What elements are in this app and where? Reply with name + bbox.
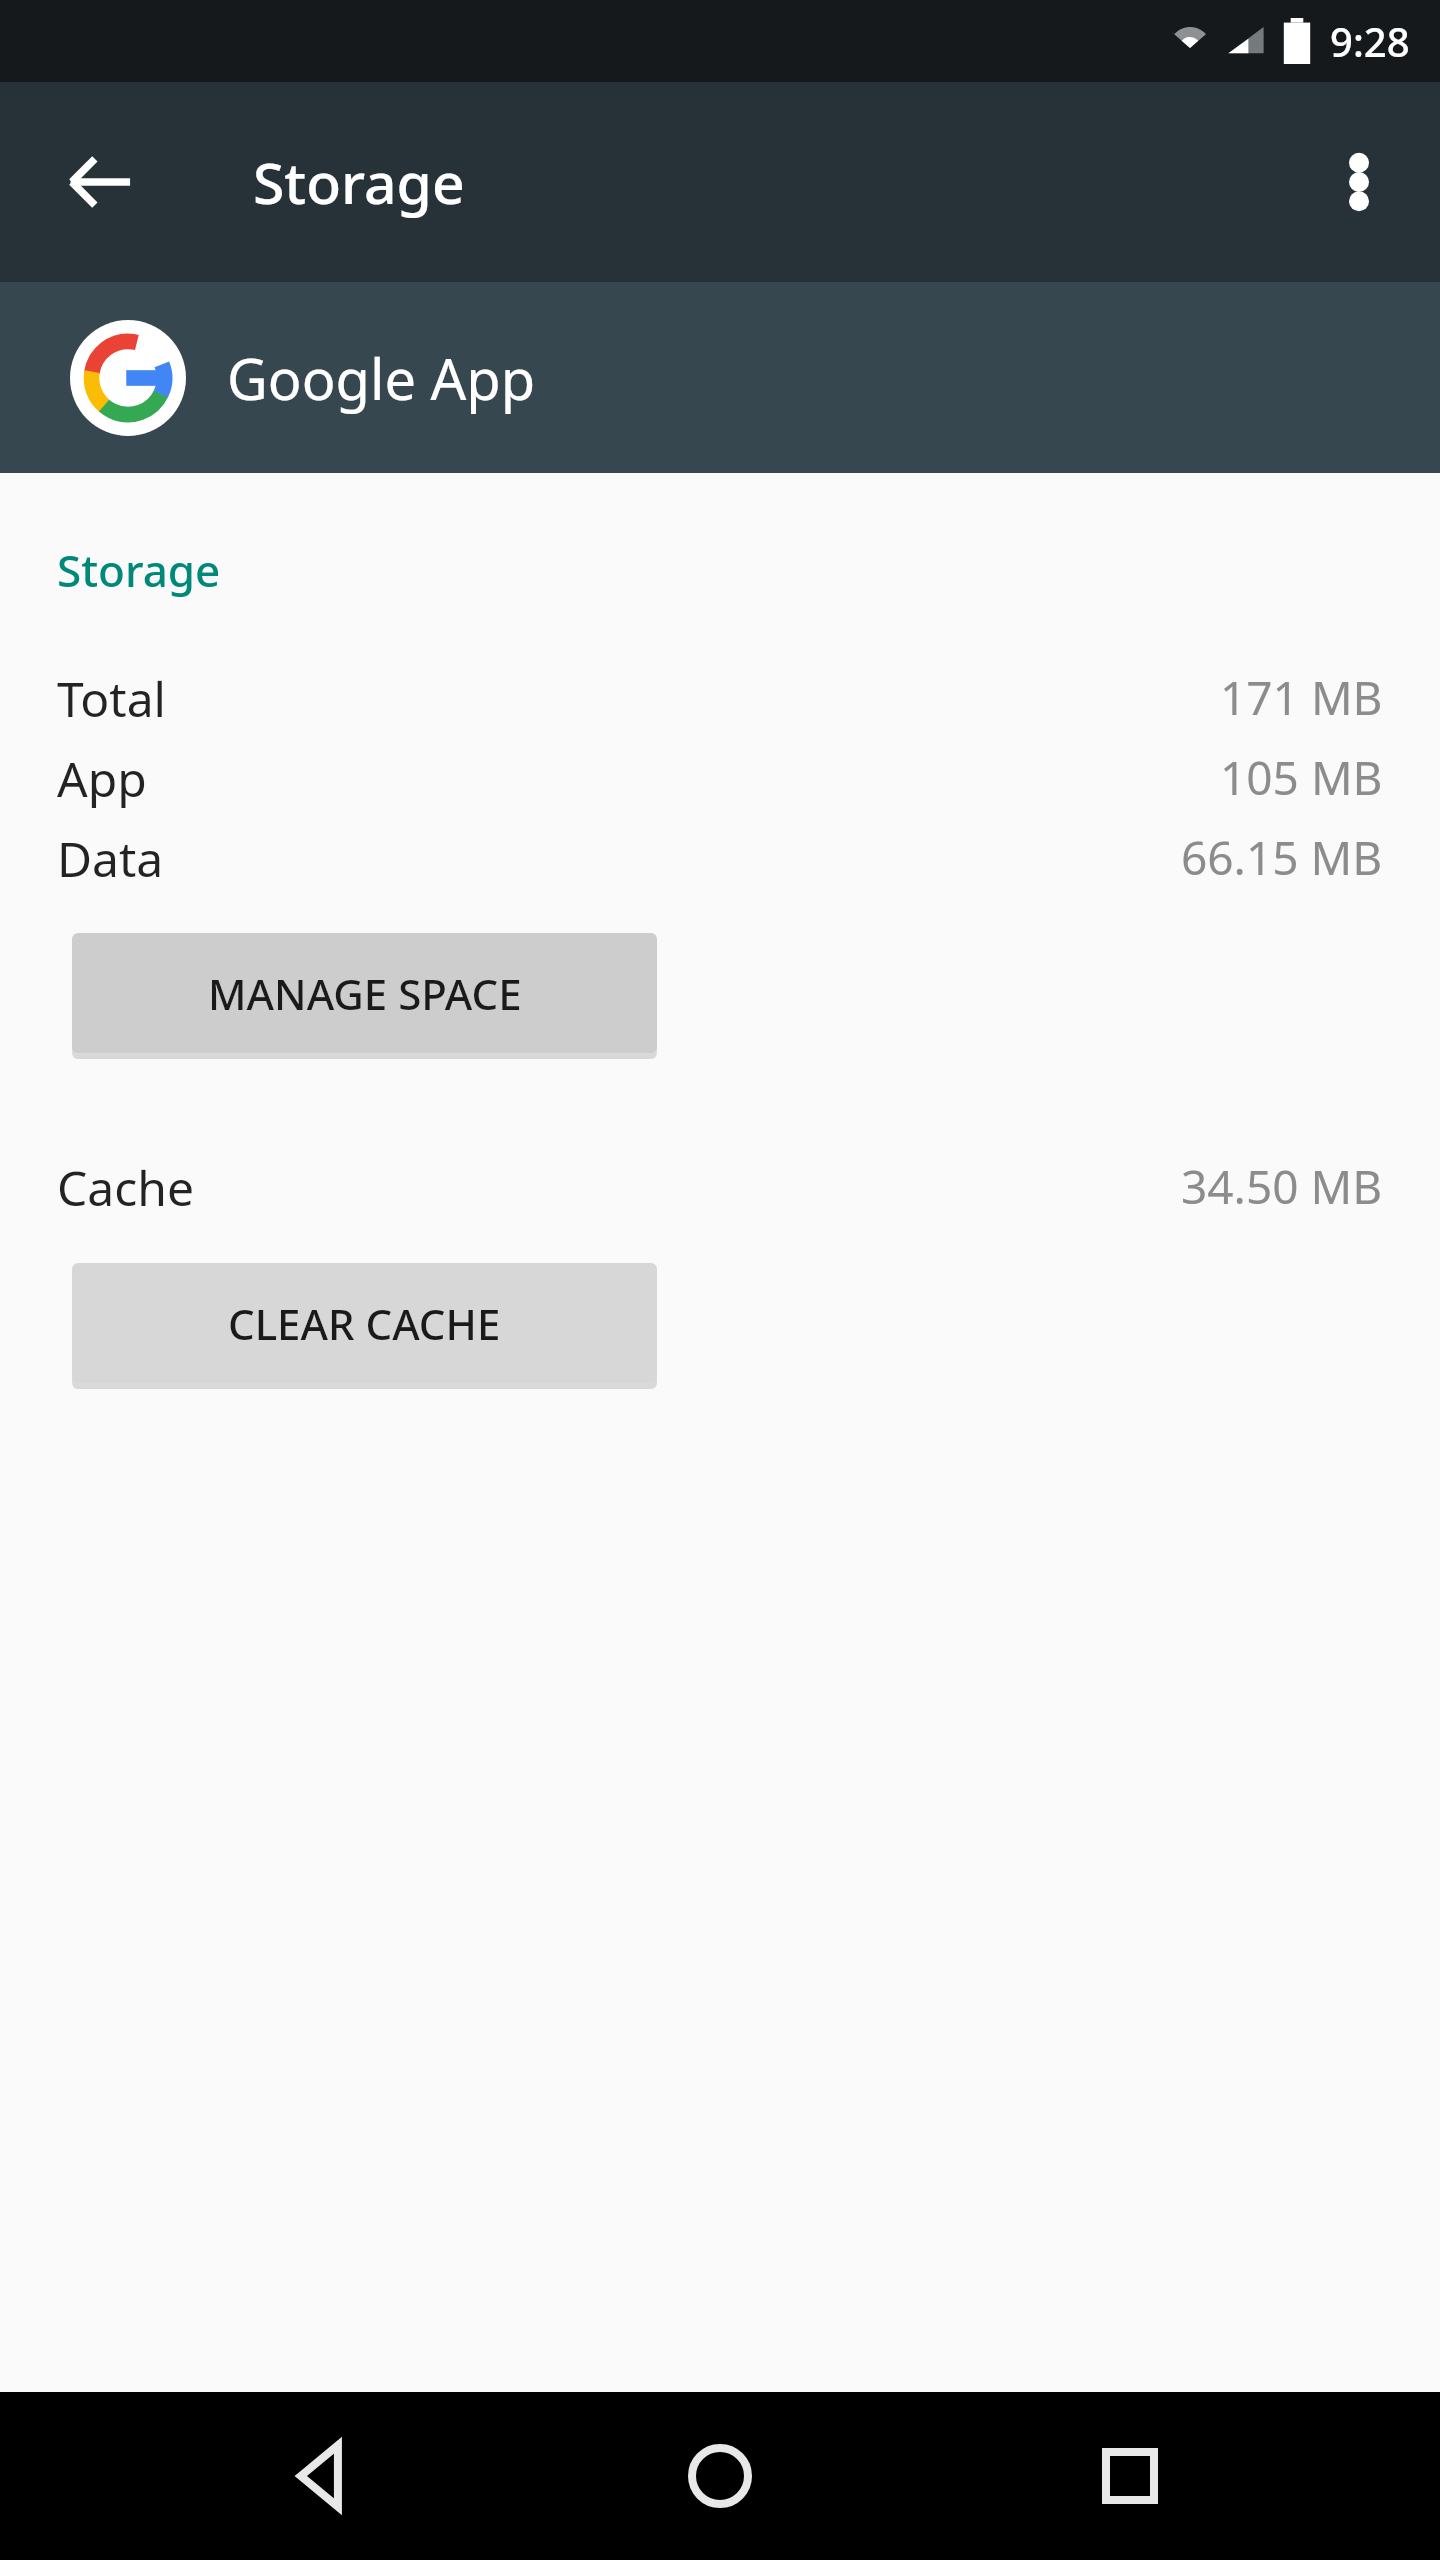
button[interactable]: More options [1294, 117, 1424, 247]
staticText: Storage [253, 143, 465, 221]
staticText: 171 MB [1220, 666, 1383, 728]
button[interactable]: MANAGE SPACE [72, 933, 657, 1053]
staticText: Total [57, 666, 167, 728]
button[interactable]: CLEAR CACHE [72, 1263, 657, 1383]
staticText: Storage [57, 540, 221, 600]
staticText: 9:28 [1330, 14, 1410, 68]
staticText: MANAGE SPACE [208, 965, 522, 1022]
button[interactable]: Recent apps [1040, 2392, 1220, 2560]
staticText: 105 MB [1220, 746, 1383, 808]
staticText: Google App [227, 340, 536, 416]
staticText: CLEAR CACHE [228, 1295, 501, 1352]
staticText: 66.15 MB [1181, 826, 1383, 888]
button[interactable]: Home [630, 2392, 810, 2560]
button[interactable]: Back [30, 112, 170, 252]
staticText: App [57, 746, 147, 808]
staticText: Cache [57, 1155, 195, 1217]
button[interactable]: Back [230, 2392, 410, 2560]
staticText: 34.50 MB [1181, 1155, 1383, 1217]
staticText: Data [57, 826, 164, 888]
